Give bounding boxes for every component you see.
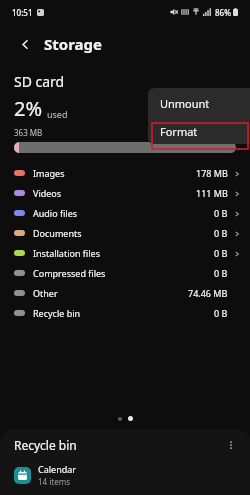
staticText: Installation files	[33, 247, 100, 259]
staticText: Audio files	[33, 207, 78, 219]
staticText: 0 B	[214, 207, 228, 219]
staticText: 0 B	[214, 307, 228, 319]
button[interactable]: Unmount	[148, 88, 250, 118]
staticText: 86%	[215, 7, 231, 18]
staticText: 10:51	[12, 7, 33, 18]
staticText: 0 B	[214, 227, 228, 239]
button[interactable]: Compressed files	[0, 263, 250, 283]
staticText: 14 items	[38, 476, 71, 487]
button[interactable]: Videos	[0, 183, 250, 203]
staticText: 0 B	[214, 267, 228, 279]
button[interactable]: Back	[12, 31, 38, 57]
staticText: Calendar	[38, 463, 76, 475]
button[interactable]: Documents	[0, 223, 250, 243]
staticText: Images	[33, 167, 65, 179]
staticText: Unmount	[160, 96, 210, 111]
staticText: Other	[33, 287, 58, 299]
staticText: 74.46 MB	[188, 287, 228, 299]
staticText: Storage	[44, 34, 102, 54]
button[interactable]: Recycle bin	[0, 303, 250, 323]
button[interactable]: Installation files	[0, 243, 250, 263]
staticText: SD card	[14, 72, 65, 91]
button[interactable]: Other	[0, 283, 250, 303]
staticText: 2%	[14, 95, 43, 122]
staticText: Videos	[33, 187, 62, 199]
staticText: used	[47, 108, 68, 120]
staticText: 363 MB	[14, 127, 43, 138]
staticText: 0 B	[214, 247, 228, 259]
staticText: 178 MB	[196, 167, 228, 179]
button[interactable]: Audio files	[0, 203, 250, 223]
staticText: Format	[160, 124, 198, 139]
button[interactable]: More options	[222, 436, 240, 454]
button[interactable]: Format	[148, 118, 250, 144]
button[interactable]: Calendar	[0, 461, 250, 495]
staticText: Compressed files	[33, 267, 106, 279]
button[interactable]: Images	[0, 163, 250, 183]
staticText: 111 MB	[196, 187, 228, 199]
staticText: Recycle bin	[14, 437, 77, 453]
staticText: Recycle bin	[33, 307, 81, 319]
staticText: Documents	[33, 227, 82, 239]
